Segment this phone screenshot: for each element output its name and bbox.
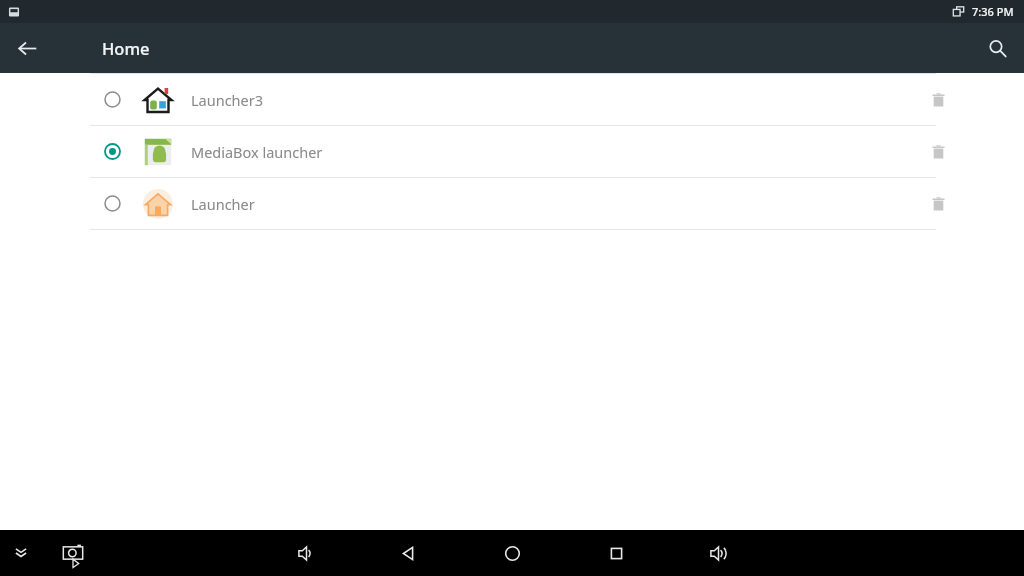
button[interactable]: Home xyxy=(493,534,531,572)
staticText: Launcher3 xyxy=(191,90,264,110)
staticText: 7:36 PM xyxy=(972,4,1014,19)
button[interactable]: Volume down xyxy=(287,534,325,572)
button[interactable]: Recents xyxy=(597,534,635,572)
button[interactable]: Delete xyxy=(918,132,958,172)
button[interactable]: Launcher xyxy=(0,178,1024,229)
staticText: Home xyxy=(102,37,150,59)
button[interactable]: Volume up xyxy=(699,534,737,572)
button[interactable]: Screenshot xyxy=(56,536,90,570)
staticText: MediaBox launcher xyxy=(191,142,323,162)
button[interactable]: Back xyxy=(6,27,48,69)
button[interactable]: Back xyxy=(389,534,427,572)
button[interactable]: MediaBox launcher xyxy=(0,126,1024,177)
button[interactable]: Launcher3 xyxy=(0,74,1024,125)
button[interactable]: Hide navigation bar xyxy=(6,538,36,568)
button[interactable]: Search xyxy=(976,27,1018,69)
button[interactable]: Delete xyxy=(918,184,958,224)
staticText: Launcher xyxy=(191,194,255,214)
button[interactable]: Delete xyxy=(918,80,958,120)
